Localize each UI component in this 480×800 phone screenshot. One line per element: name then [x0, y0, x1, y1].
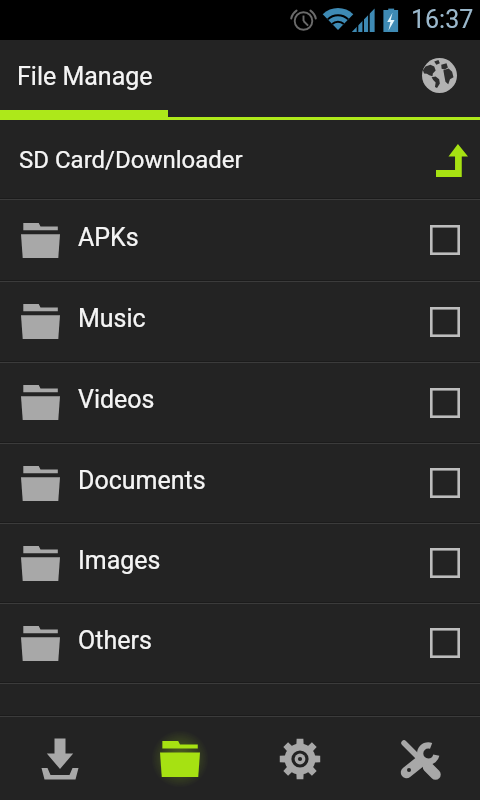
staticText: Images [78, 546, 410, 575]
button[interactable]: Documents [0, 444, 480, 522]
button[interactable]: Tools [360, 717, 480, 800]
staticText: APKs [78, 223, 410, 252]
button[interactable]: Browser [416, 52, 462, 98]
button[interactable]: Images [0, 524, 480, 602]
button[interactable]: Downloads [0, 717, 120, 800]
button[interactable]: Videos [0, 363, 480, 442]
staticText: 16:37 [411, 5, 474, 34]
button[interactable]: Select Music [410, 282, 480, 361]
button[interactable]: APKs [0, 200, 480, 280]
button[interactable]: Settings [240, 717, 360, 800]
button[interactable]: Up one level [430, 138, 474, 182]
staticText: Music [78, 304, 410, 333]
staticText: Videos [78, 385, 410, 414]
button[interactable]: Select Videos [410, 363, 480, 442]
staticText: Documents [78, 466, 410, 495]
button[interactable]: Music [0, 282, 480, 361]
button[interactable]: Select Documents [410, 444, 480, 522]
button[interactable]: SD Card/Downloader [0, 120, 480, 198]
button[interactable]: Select Others [410, 604, 480, 682]
button[interactable]: Others [0, 604, 480, 682]
button[interactable]: Select APKs [410, 200, 480, 280]
staticText: SD Card/Downloader [19, 146, 243, 174]
button[interactable]: Files [120, 717, 240, 800]
staticText: Others [78, 626, 410, 655]
button[interactable]: Select Images [410, 524, 480, 602]
staticText: File Manage [17, 62, 153, 91]
